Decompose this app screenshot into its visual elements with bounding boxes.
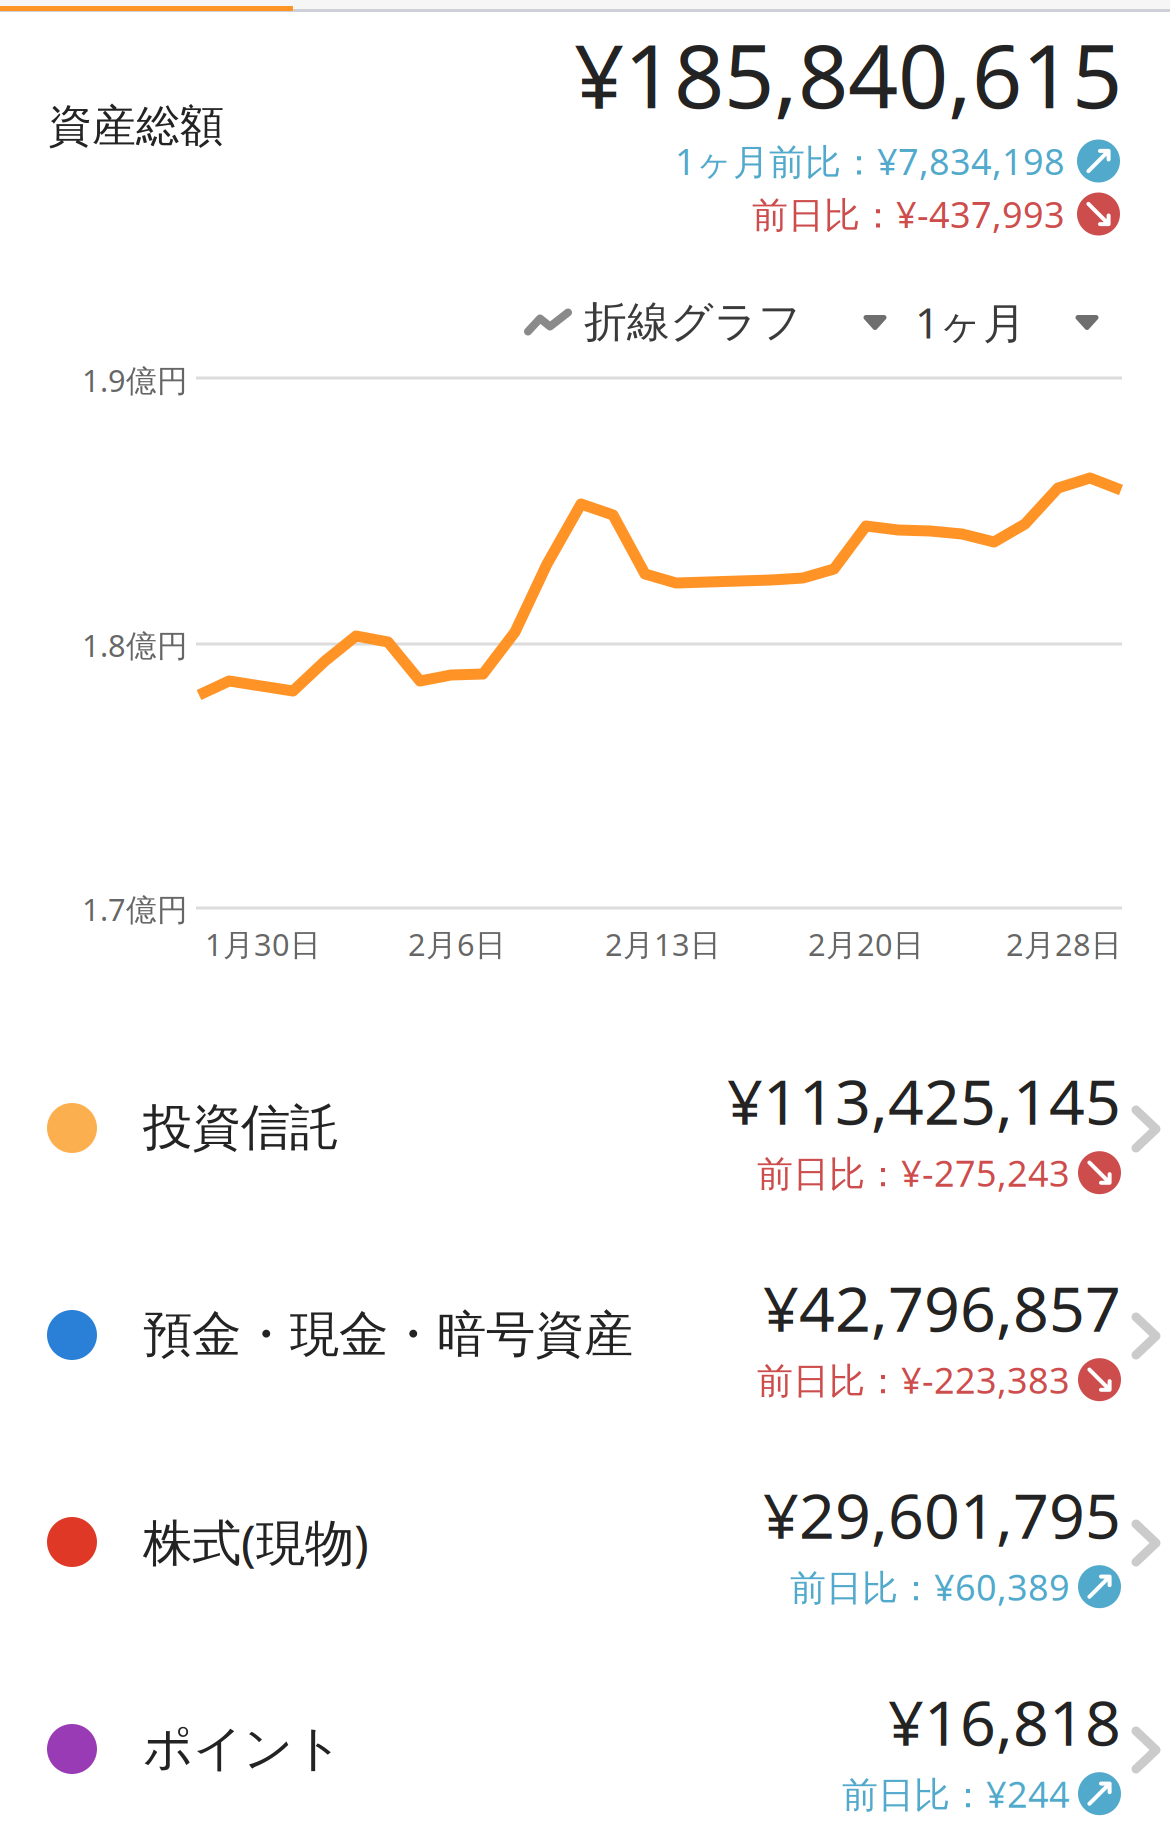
button[interactable]: 預金・現金・暗号資産	[0, 1231, 1170, 1438]
staticText: ¥16,818	[888, 1679, 1121, 1764]
button[interactable]: ポイント	[0, 1645, 1170, 1836]
staticText: 1.7億円	[82, 888, 188, 930]
staticText: ¥29,601,795	[763, 1472, 1121, 1557]
staticText: 1ヶ月	[915, 293, 1026, 351]
button[interactable]: 株式(現物)	[0, 1438, 1170, 1645]
staticText: ¥185,840,615	[574, 14, 1122, 134]
staticText: 2月13日	[605, 923, 721, 965]
staticText: 1月30日	[205, 923, 321, 965]
staticText: 2月6日	[408, 923, 506, 965]
staticText: 1ヶ月前比：¥7,834,198	[675, 136, 1065, 185]
staticText: 預金・現金・暗号資産	[143, 1303, 633, 1365]
staticText: 前日比：¥-275,243	[757, 1148, 1070, 1197]
staticText: 資産総額	[48, 98, 224, 154]
staticText: 株式(現物)	[143, 1508, 369, 1575]
button[interactable]: 折線グラフ	[524, 295, 886, 349]
staticText: 1.8億円	[82, 624, 188, 666]
staticText: 投資信託	[143, 1096, 339, 1158]
staticText: 2月20日	[808, 923, 924, 965]
staticText: 前日比：¥-437,993	[752, 189, 1065, 238]
staticText: 前日比：¥-223,383	[757, 1355, 1070, 1404]
staticText: 1.9億円	[82, 359, 188, 401]
button[interactable]: 投資信託	[0, 1024, 1170, 1231]
staticText: 前日比：¥244	[842, 1769, 1070, 1818]
staticText: 前日比：¥60,389	[790, 1562, 1070, 1611]
staticText: ポイント	[143, 1717, 343, 1779]
staticText: 2月28日	[1006, 923, 1122, 965]
staticText: 折線グラフ	[584, 295, 802, 349]
button[interactable]: 1ヶ月	[915, 293, 1098, 351]
staticText: ¥113,425,145	[727, 1058, 1121, 1143]
staticText: ¥42,796,857	[763, 1265, 1121, 1350]
